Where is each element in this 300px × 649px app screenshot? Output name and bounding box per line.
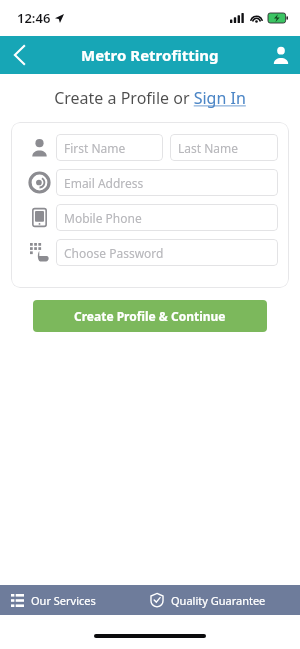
staticText: Our Services [31,593,96,608]
button[interactable]: Back [0,36,38,74]
staticText: Choose Password [64,245,164,261]
button[interactable]: Account [262,36,300,74]
button[interactable]: First Name [56,134,163,161]
staticText: First Name [64,140,126,156]
staticText: Mobile Phone [64,210,142,226]
staticText: Create Profile & Continue [74,308,226,324]
button[interactable]: Choose Password [56,239,278,266]
button[interactable]: Quality Guarantee [150,585,300,615]
button[interactable]: Last Name [170,134,278,161]
button[interactable]: Create Profile & Continue [33,300,267,332]
staticText: 12:46 [17,9,51,27]
staticText: Quality Guarantee [171,593,266,608]
button[interactable]: Email Address [56,169,278,196]
button[interactable]: Our Services [0,585,150,615]
staticText: Last Name [178,140,239,156]
staticText: Email Address [64,175,144,191]
button[interactable]: Mobile Phone [56,204,278,231]
staticText: Create a Profile or Sign In [54,87,246,109]
staticText: Metro Retrofitting [81,45,219,65]
